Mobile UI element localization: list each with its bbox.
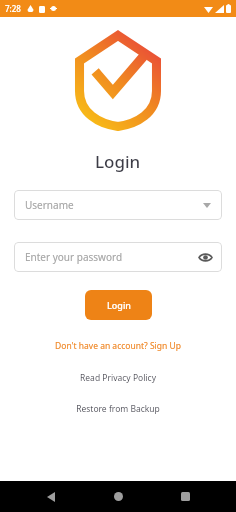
staticText: 7:28 [5, 3, 21, 14]
staticText: Don't have an account? Sign Up [55, 340, 181, 352]
staticText: Username [25, 198, 74, 212]
button[interactable]: Home [102, 481, 134, 512]
button[interactable]: Username [14, 190, 222, 220]
button[interactable]: Read Privacy Policy [0, 372, 236, 384]
staticText: Read Privacy Policy [80, 372, 156, 384]
button[interactable]: Restore from Backup [0, 403, 236, 415]
staticText: Enter your password [25, 250, 123, 264]
staticText: Login [95, 150, 141, 173]
button[interactable]: Login [85, 290, 152, 320]
button[interactable]: Back [35, 481, 67, 512]
button[interactable]: Recent apps [169, 481, 201, 512]
staticText: Restore from Backup [76, 403, 160, 415]
staticText: Login [107, 299, 131, 311]
button[interactable]: Show password [197, 249, 213, 265]
button[interactable]: Enter your password [14, 242, 222, 272]
other: Shield logo [75, 31, 161, 131]
button[interactable]: Don't have an account? Sign Up [0, 340, 236, 352]
